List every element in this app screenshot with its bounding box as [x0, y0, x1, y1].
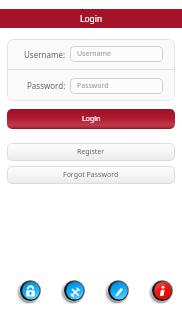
- button[interactable]: Settings: [62, 280, 85, 303]
- button[interactable]: Password: [70, 78, 163, 94]
- staticText: Register: [77, 147, 105, 157]
- button[interactable]: Username: [70, 46, 163, 62]
- button[interactable]: Login: [18, 280, 41, 303]
- button[interactable]: Forgot Password: [7, 166, 175, 184]
- staticText: Forgot Password: [63, 170, 119, 180]
- staticText: Login: [82, 114, 101, 124]
- staticText: Username: [77, 49, 112, 59]
- button[interactable]: Info: [150, 280, 173, 303]
- staticText: Password: [77, 81, 109, 91]
- staticText: Login: [80, 13, 103, 25]
- button[interactable]: Login: [7, 109, 175, 129]
- button[interactable]: Register: [7, 143, 175, 161]
- staticText: Password:: [27, 80, 66, 91]
- staticText: Username:: [24, 49, 66, 60]
- button[interactable]: Edit: [106, 280, 129, 303]
